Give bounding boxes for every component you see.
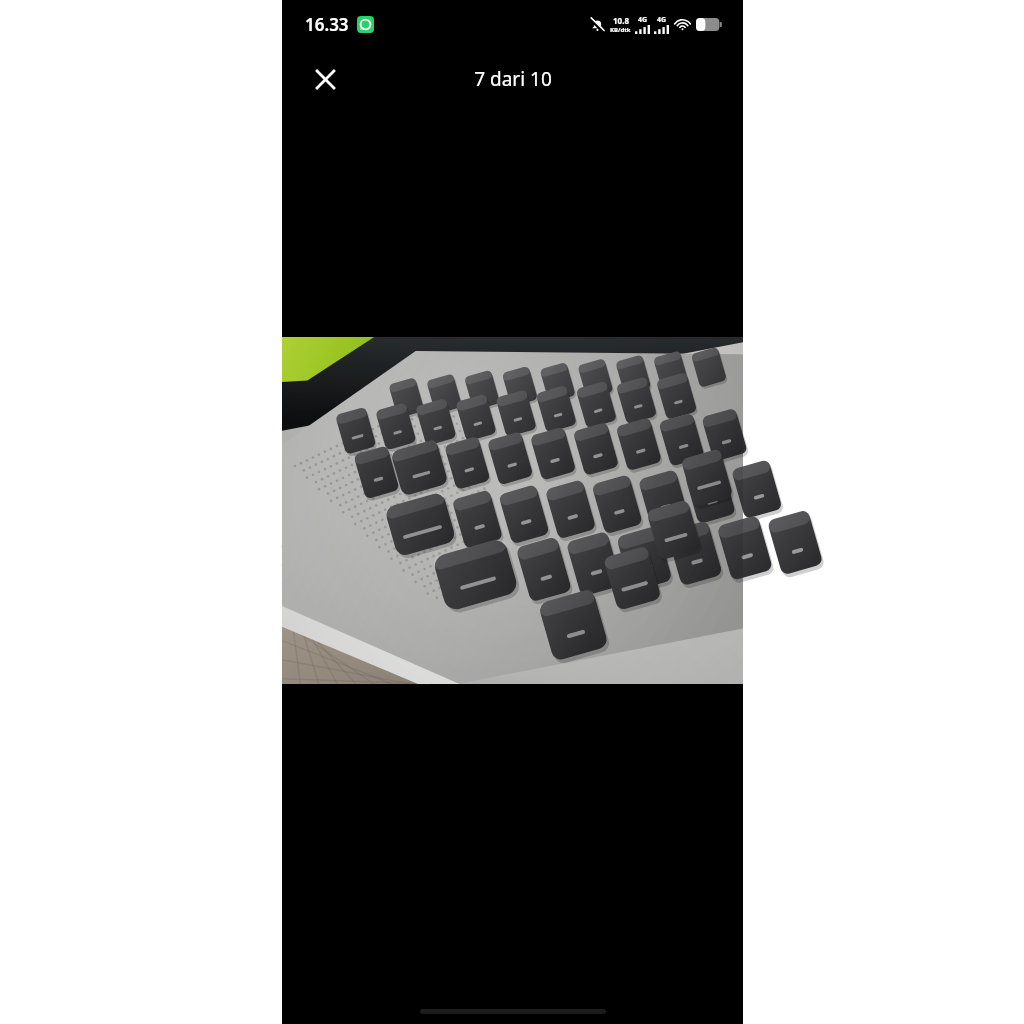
- staticText: 16.33: [305, 13, 349, 36]
- staticText: 7 dari 10: [474, 66, 552, 92]
- staticText: 4G: [657, 15, 667, 25]
- button[interactable]: Tutup: [302, 56, 348, 102]
- staticText: 10.8: [613, 15, 629, 26]
- staticText: KB/dtk: [610, 26, 631, 34]
- staticText: 4G: [638, 15, 648, 25]
